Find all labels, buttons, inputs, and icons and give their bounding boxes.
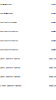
staticText: English bbox=[49, 57, 56, 60]
staticText: Short pattern names bbox=[0, 75, 20, 78]
staticText: English bbox=[49, 75, 56, 78]
staticText: English bbox=[51, 22, 56, 23]
staticText: English bbox=[49, 84, 56, 87]
staticText: Short pattern names bbox=[0, 4, 12, 5]
staticText: English bbox=[49, 66, 56, 69]
staticText: English bbox=[51, 39, 56, 42]
staticText: Short pattern names bbox=[0, 13, 13, 14]
staticText: Short pattern names bbox=[0, 57, 20, 60]
staticText: Short pattern names bbox=[0, 22, 17, 23]
staticText: Short pattern names bbox=[0, 84, 21, 87]
staticText: Short pattern names bbox=[0, 30, 18, 32]
staticText: Short pattern names bbox=[0, 66, 20, 69]
staticText: English bbox=[51, 30, 56, 32]
staticText: Short pattern names bbox=[0, 48, 18, 51]
staticText: Short pattern names bbox=[0, 39, 18, 42]
staticText: English bbox=[51, 13, 56, 14]
staticText: English bbox=[51, 48, 56, 51]
staticText: English bbox=[51, 4, 56, 5]
